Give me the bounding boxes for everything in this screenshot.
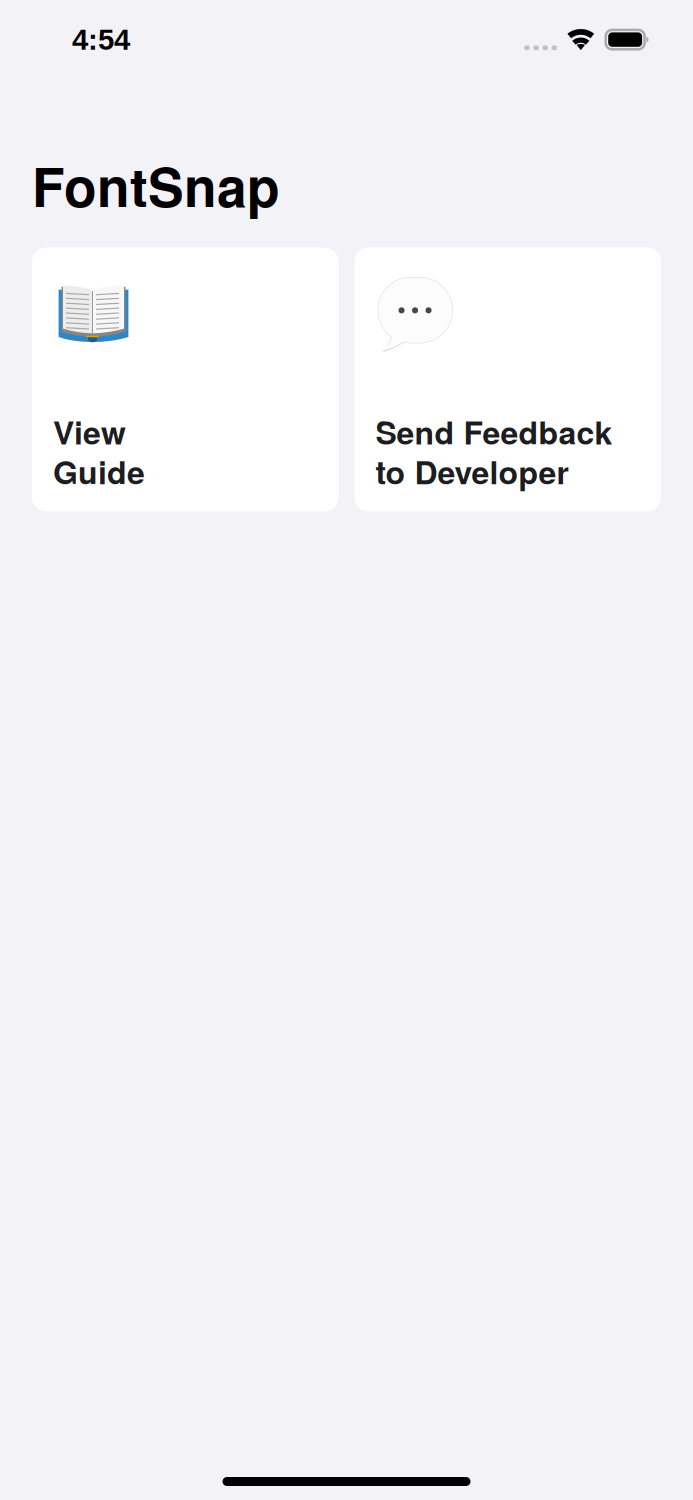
staticText: 4:54 [72, 23, 130, 56]
staticText: Guide [53, 448, 145, 494]
staticText: Send Feedback [375, 408, 612, 454]
staticText: to Developer [375, 448, 568, 494]
staticText: FontSnap [32, 147, 280, 223]
staticText: View [53, 408, 126, 454]
button[interactable]: View Guide [32, 247, 338, 511]
button[interactable]: Send Feedback to Developer [354, 247, 661, 511]
